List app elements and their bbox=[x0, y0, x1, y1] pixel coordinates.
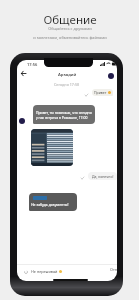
staticText: Не переживай bbox=[31, 269, 58, 274]
staticText: Общайтесь с друзьями и коллегами, обмени… bbox=[33, 26, 107, 40]
button[interactable]: Привет bbox=[94, 89, 111, 96]
button[interactable]: Back bbox=[18, 69, 28, 78]
staticText: Привет, ты помнишь, что сегодня у нас вс… bbox=[36, 110, 92, 120]
button[interactable]: Не переживай bbox=[24, 266, 70, 277]
button[interactable]: Profile bbox=[108, 73, 114, 79]
staticText: Привет bbox=[94, 90, 107, 95]
staticText: Не забудь документы! bbox=[31, 202, 69, 207]
staticText: Да, конечно! bbox=[92, 174, 114, 179]
staticText: Аркадий bbox=[58, 72, 77, 78]
staticText: 17:56 bbox=[27, 62, 38, 67]
button[interactable]: Не забудь документы! bbox=[29, 193, 77, 211]
button[interactable]: Да, конечно! bbox=[88, 172, 117, 180]
button[interactable]: Отправить bbox=[110, 267, 117, 272]
staticText: Сегодня 17:58 bbox=[54, 82, 80, 87]
button[interactable]: Photo bbox=[31, 129, 73, 166]
button[interactable]: Привет, ты помнишь, что сегодня у нас вс… bbox=[33, 105, 95, 124]
staticText: Общение bbox=[43, 12, 97, 28]
